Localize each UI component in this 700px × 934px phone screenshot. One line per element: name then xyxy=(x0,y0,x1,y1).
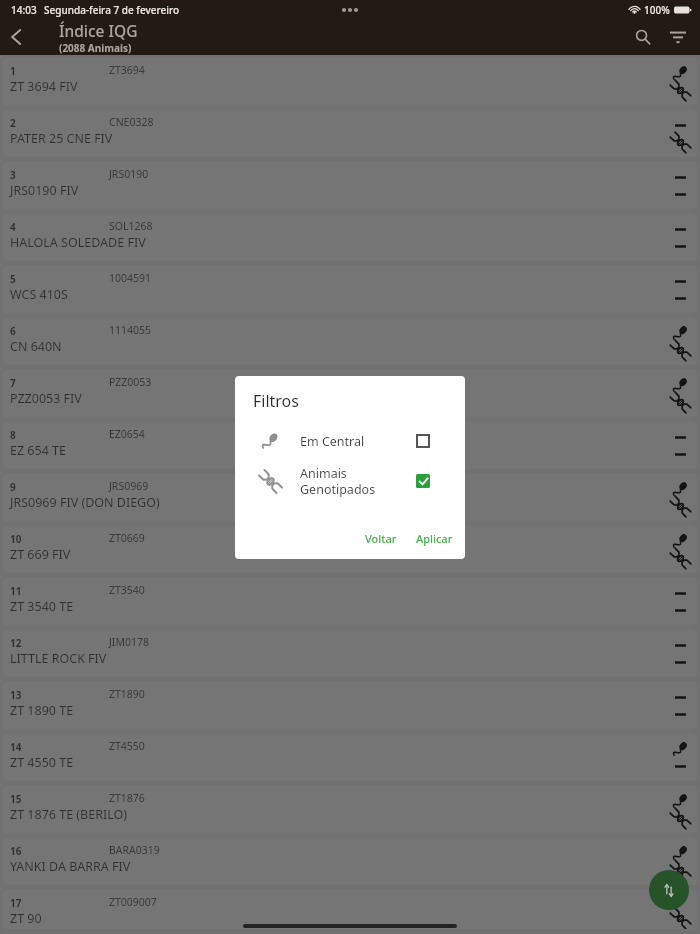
staticText: JRS0190 FIV xyxy=(10,182,79,199)
staticText: ZT 90 xyxy=(10,910,42,927)
button[interactable]: 10 xyxy=(3,526,697,573)
staticText: ZT009007 xyxy=(109,895,157,909)
staticText: 16 xyxy=(10,844,22,858)
staticText: 10 xyxy=(10,532,22,546)
staticText: ZT 1890 TE xyxy=(10,702,74,719)
button[interactable]: Voltar xyxy=(357,527,405,550)
staticText: CNE0328 xyxy=(109,115,154,129)
staticText: LITTLE ROCK FIV xyxy=(10,650,107,667)
staticText: 5 xyxy=(10,272,16,286)
staticText: ZT 1876 TE (BERILO) xyxy=(10,806,128,823)
button[interactable]: Pesquisar xyxy=(626,19,660,55)
button[interactable]: 11 xyxy=(3,578,697,625)
staticText: ZT 3694 FIV xyxy=(10,78,78,95)
staticText: 1 xyxy=(10,64,16,78)
staticText: JRS0969 FIV (DON DIEGO) xyxy=(10,494,160,511)
staticText: Voltar xyxy=(365,531,397,546)
staticText: ZT 669 FIV xyxy=(10,546,71,563)
staticText: Aplicar xyxy=(416,531,453,546)
staticText: ZT 3540 TE xyxy=(10,598,74,615)
staticText: 14:03 xyxy=(11,3,37,17)
staticText: 11 xyxy=(10,584,22,598)
staticText: 14 xyxy=(10,740,22,754)
staticText: JIM0178 xyxy=(109,635,149,649)
staticText: 3 xyxy=(10,168,16,182)
button[interactable]: 13 xyxy=(3,682,697,729)
staticText: 1114055 xyxy=(109,323,152,337)
staticText: 15 xyxy=(10,792,22,806)
staticText: ZT3694 xyxy=(109,63,145,77)
staticText: JRS0969 xyxy=(109,479,149,493)
button[interactable]: 3 xyxy=(3,162,697,209)
button[interactable]: 8 xyxy=(3,422,697,469)
staticText: ZT1876 xyxy=(109,791,145,805)
button[interactable]: Filtros xyxy=(661,19,695,55)
staticText: 4 xyxy=(10,220,16,234)
staticText: 6 xyxy=(10,324,16,338)
button[interactable]: 7 xyxy=(3,370,697,417)
staticText: CN 640N xyxy=(10,338,62,355)
staticText: Animais Genotipados xyxy=(300,465,376,498)
staticText: BARA0319 xyxy=(109,843,160,857)
staticText: 17 xyxy=(10,896,22,910)
staticText: EZ0654 xyxy=(109,427,145,441)
button[interactable]: 16 xyxy=(3,838,697,885)
button[interactable]: 4 xyxy=(3,214,697,261)
staticText: 2 xyxy=(10,116,16,130)
staticText: 8 xyxy=(10,428,16,442)
staticText: 13 xyxy=(10,688,22,702)
button[interactable]: Voltar xyxy=(0,19,31,55)
staticText: WCS 410S xyxy=(10,286,68,303)
staticText: HALOLA SOLEDADE FIV xyxy=(10,234,146,251)
staticText: PZZ0053 FIV xyxy=(10,390,82,407)
button[interactable]: 17 xyxy=(3,890,697,929)
staticText: PATER 25 CNE FIV xyxy=(10,130,113,147)
staticText: 9 xyxy=(10,480,16,494)
button[interactable]: Em Central xyxy=(235,424,465,458)
staticText: ZT0669 xyxy=(109,531,145,545)
button[interactable]: Ordenar xyxy=(649,870,689,910)
button[interactable]: 6 xyxy=(3,318,697,365)
staticText: ZT 4550 TE xyxy=(10,754,74,771)
staticText: PZZ0053 xyxy=(109,375,152,389)
button[interactable]: Aplicar xyxy=(408,527,461,550)
staticText: JRS0190 xyxy=(109,167,149,181)
button[interactable]: 1 xyxy=(3,58,697,105)
button[interactable]: 14 xyxy=(3,734,697,781)
staticText: SOL1268 xyxy=(109,219,153,233)
button[interactable]: 5 xyxy=(3,266,697,313)
staticText: (2088 Animais) xyxy=(59,41,132,55)
staticText: ZT4550 xyxy=(109,739,145,753)
staticText: 1004591 xyxy=(109,271,152,285)
button[interactable]: 9 xyxy=(3,474,697,521)
staticText: YANKI DA BARRA FIV xyxy=(10,858,131,875)
staticText: EZ 654 TE xyxy=(10,442,66,459)
button[interactable]: 12 xyxy=(3,630,697,677)
staticText: ZT3540 xyxy=(109,583,145,597)
button[interactable]: Animais Genotipados xyxy=(235,464,465,498)
staticText: ZT1890 xyxy=(109,687,145,701)
staticText: 12 xyxy=(10,636,22,650)
staticText: Segunda-feira 7 de fevereiro xyxy=(44,3,180,17)
staticText: 7 xyxy=(10,376,16,390)
button[interactable]: 2 xyxy=(3,110,697,157)
staticText: Filtros xyxy=(253,390,299,412)
button[interactable]: 15 xyxy=(3,786,697,833)
staticText: Índice IQG xyxy=(59,20,138,41)
staticText: 100% xyxy=(644,3,670,17)
staticText: Em Central xyxy=(300,433,365,450)
